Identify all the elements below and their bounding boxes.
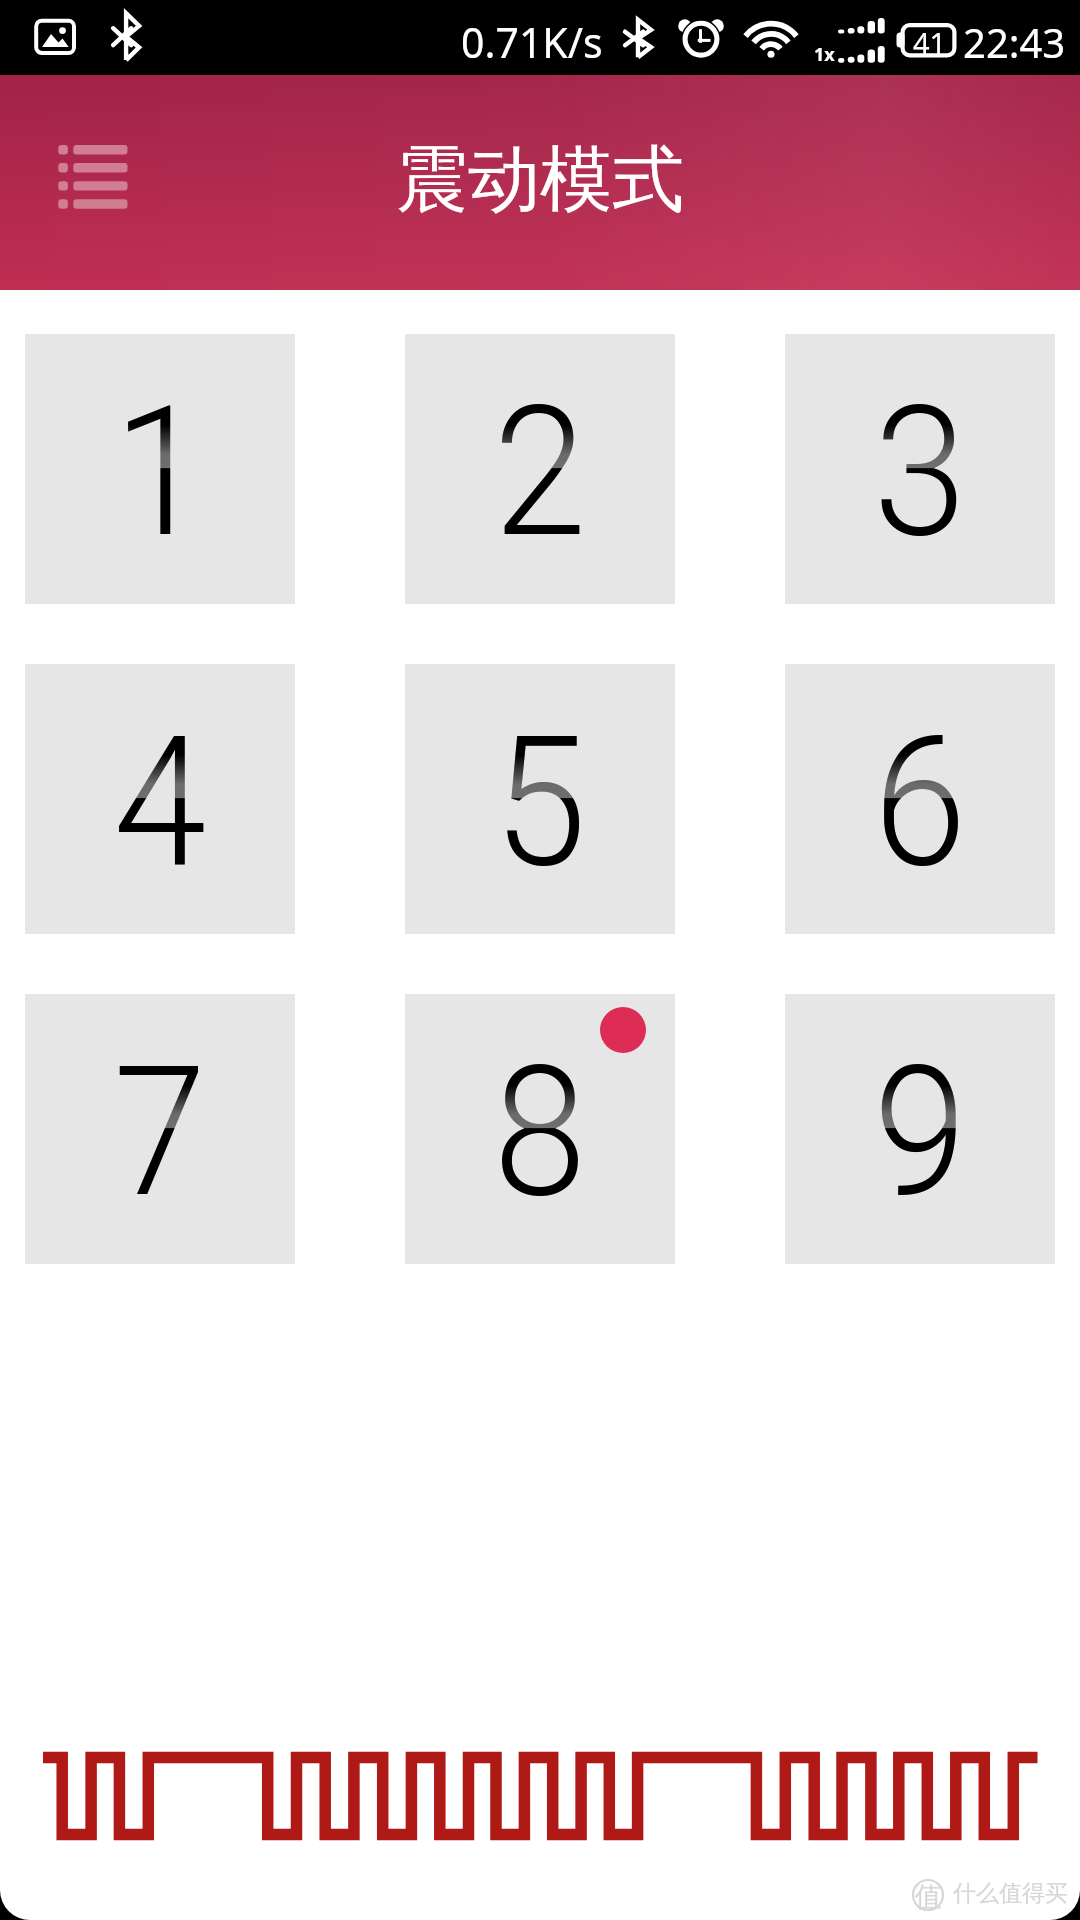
staticText: 3 [873, 367, 966, 578]
staticText: 0.71K/s [461, 14, 603, 70]
button[interactable]: 8 [405, 994, 675, 1264]
staticText: 5 [493, 697, 586, 908]
staticText: 震动模式 [396, 135, 684, 226]
staticText: 9 [873, 1027, 966, 1238]
button[interactable]: 4 [25, 664, 295, 934]
staticText: 41 [913, 23, 947, 62]
staticText: 1 [113, 367, 206, 578]
button[interactable]: 7 [25, 994, 295, 1264]
staticText: 22:43 [963, 15, 1066, 69]
staticText: 6 [873, 697, 966, 908]
button[interactable]: 2 [405, 334, 675, 604]
button[interactable]: 3 [785, 334, 1055, 604]
staticText: 4 [113, 697, 206, 908]
button[interactable]: 6 [785, 664, 1055, 934]
staticText: 值 [915, 1880, 942, 1914]
staticText: 2 [493, 367, 586, 578]
button[interactable]: 5 [405, 664, 675, 934]
button[interactable]: 1 [25, 334, 295, 604]
staticText: 1x [814, 42, 835, 67]
button[interactable]: Menu [28, 130, 158, 230]
button[interactable]: 9 [785, 994, 1055, 1264]
staticText: 7 [113, 1027, 206, 1238]
staticText: 8 [493, 1027, 586, 1238]
staticText: 什么值得买 [953, 1879, 1068, 1908]
